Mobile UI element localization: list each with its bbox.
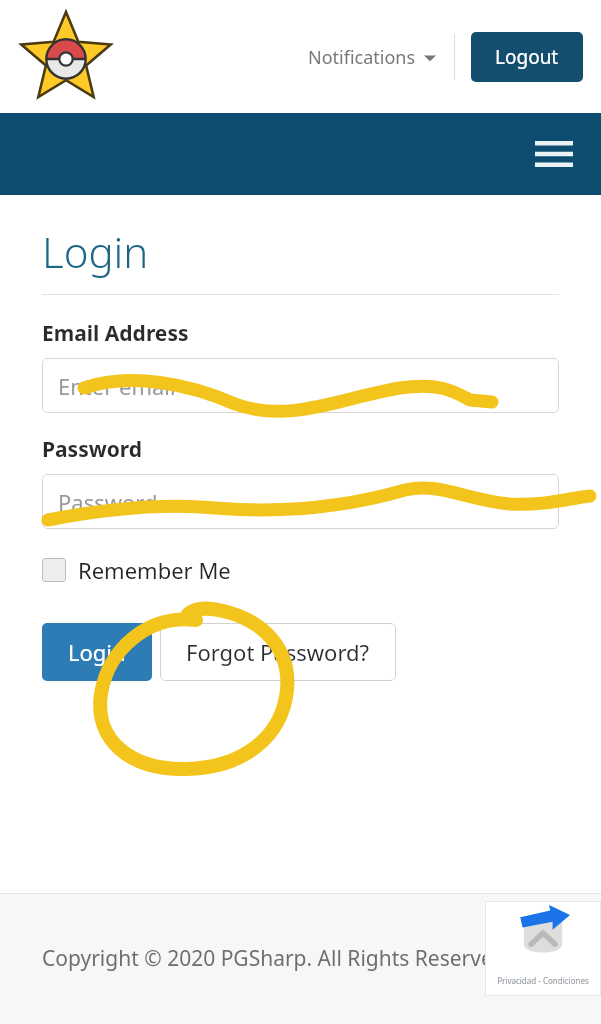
staticText: Copyright © 2020 PGSharp. All Rights Res… (42, 944, 506, 973)
staticText: Password (58, 487, 158, 517)
staticText: Login (42, 223, 149, 280)
button[interactable]: Menu (525, 131, 583, 177)
staticText: Notifications (308, 45, 416, 70)
staticText: Logout (495, 44, 559, 70)
button[interactable]: Remember Me (42, 553, 231, 587)
button[interactable]: Logout (471, 32, 583, 82)
button[interactable]: Password (42, 474, 559, 529)
staticText: Enter email (58, 371, 176, 401)
button[interactable]: Notifications (302, 37, 442, 78)
staticText: Login (68, 637, 126, 667)
staticText: Email Address (42, 319, 189, 348)
staticText: Password (42, 435, 143, 464)
staticText: Privacidad - Condiciones (497, 975, 589, 986)
button[interactable]: Forgot Password? (160, 623, 396, 681)
button[interactable]: reCAPTCHA privacy and terms (485, 901, 601, 996)
staticText: Forgot Password? (186, 637, 370, 667)
button[interactable]: Enter email (42, 358, 559, 413)
staticText: Remember Me (78, 555, 231, 585)
button[interactable]: Login (42, 623, 152, 681)
